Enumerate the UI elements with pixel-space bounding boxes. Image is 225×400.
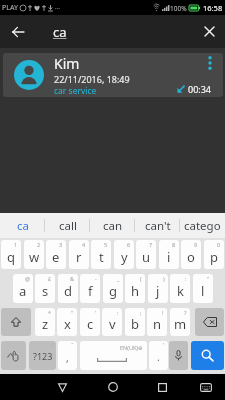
staticText: 2 — [37, 241, 41, 248]
staticText: ca — [17, 218, 29, 234]
button[interactable]: Back — [0, 15, 36, 48]
button[interactable]: catego — [180, 213, 225, 238]
button[interactable]: £ — [35, 274, 55, 303]
staticText: 00:34 — [188, 83, 212, 95]
staticText: u — [142, 248, 151, 266]
button[interactable]: Handwriting input — [1, 341, 26, 370]
button[interactable]: ! — [147, 308, 167, 336]
staticText: " — [71, 309, 74, 316]
button[interactable]: : — [102, 308, 122, 336]
button[interactable]: Shift — [1, 308, 31, 336]
staticText: ‹ — [52, 341, 54, 348]
button[interactable]: Voice input — [169, 341, 188, 370]
button[interactable]: * — [35, 308, 55, 336]
button[interactable]: 6 — [114, 240, 134, 269]
button[interactable]: ; — [125, 308, 145, 336]
staticText: j — [156, 282, 160, 300]
staticText: 100% — [170, 4, 187, 13]
button[interactable]: - — [80, 274, 100, 303]
button[interactable]: Recent apps — [140, 374, 184, 400]
button[interactable]: More options — [204, 54, 216, 72]
staticText: f — [88, 282, 93, 300]
staticText: 5 — [104, 241, 108, 248]
button[interactable]: Back — [40, 374, 84, 400]
button[interactable]: 3 — [46, 240, 66, 269]
staticText: £ — [48, 275, 52, 282]
button[interactable]: ? — [170, 308, 190, 336]
button[interactable]: can — [90, 213, 135, 238]
staticText: PLAY — [2, 3, 18, 13]
button[interactable]: Space — [80, 341, 147, 370]
staticText: can't — [145, 218, 171, 234]
staticText: y — [121, 248, 128, 266]
staticText: l — [201, 282, 205, 300]
button[interactable]: . — [149, 341, 168, 370]
staticText: i — [167, 248, 171, 266]
button[interactable]: @ — [13, 274, 33, 303]
staticText: ' — [163, 341, 165, 349]
button[interactable]: ' — [80, 308, 100, 336]
staticText: Kim — [54, 54, 80, 73]
button[interactable]: 7 — [136, 240, 156, 269]
button[interactable]: , — [58, 341, 77, 370]
button[interactable]: _ — [103, 274, 123, 303]
button[interactable]: Search — [191, 341, 224, 370]
staticText: c — [87, 315, 94, 333]
button[interactable]: Home — [90, 374, 135, 400]
button[interactable]: : — [170, 274, 190, 303]
staticText: w — [29, 248, 40, 266]
button[interactable]: 2 — [24, 240, 44, 269]
button[interactable]: Kim — [3, 53, 223, 97]
staticText: 1 — [14, 241, 18, 248]
staticText: catego — [184, 218, 221, 234]
button[interactable]: 8 — [159, 240, 179, 269]
button[interactable]: Backspace — [195, 308, 224, 336]
staticText: r — [76, 248, 82, 266]
button[interactable]: call — [45, 213, 90, 238]
button[interactable]: & — [58, 274, 78, 303]
button[interactable]: 9 — [181, 240, 201, 269]
staticText: s — [42, 282, 49, 300]
button[interactable]: " — [193, 274, 213, 303]
staticText: ! — [162, 309, 164, 316]
staticText: & — [70, 275, 75, 282]
staticText: g — [109, 282, 117, 300]
staticText: * — [48, 309, 52, 316]
button[interactable]: Clear search — [193, 15, 225, 48]
button[interactable]: ca — [0, 213, 45, 238]
staticText: q — [7, 248, 15, 266]
staticText: k — [177, 282, 184, 300]
button[interactable]: 1 — [1, 240, 21, 269]
button[interactable]: 0 — [204, 240, 224, 269]
staticText: ) — [163, 275, 165, 282]
staticText: - — [95, 275, 97, 282]
button[interactable]: ( — [125, 274, 145, 303]
staticText: z — [42, 315, 49, 333]
button[interactable]: 5 — [91, 240, 111, 269]
staticText: 4 — [82, 241, 86, 248]
button[interactable]: 4 — [69, 240, 89, 269]
staticText: ?123 — [33, 350, 53, 362]
button[interactable]: ?123 — [29, 341, 56, 370]
staticText: EN(UK)⊕ — [120, 344, 143, 351]
button[interactable]: Hide keyboard — [188, 374, 224, 400]
staticText: ˜ — [71, 341, 74, 349]
staticText: 9 — [194, 241, 198, 248]
staticText: . — [157, 350, 160, 364]
button[interactable]: ) — [148, 274, 168, 303]
staticText: ; — [140, 309, 142, 316]
staticText: m — [174, 315, 187, 333]
staticText: o — [187, 248, 195, 266]
staticText: 6 — [127, 241, 131, 248]
staticText: 16:58 — [203, 3, 223, 13]
staticText: call — [59, 218, 77, 234]
staticText: ? — [184, 309, 187, 316]
button[interactable]: " — [57, 308, 77, 336]
staticText: can — [103, 218, 123, 234]
staticText: b — [131, 315, 139, 333]
staticText: x — [64, 315, 71, 333]
staticText: 0 — [217, 241, 221, 248]
staticText: _ — [117, 275, 120, 282]
button[interactable]: can't — [135, 213, 180, 238]
staticText: : — [185, 275, 187, 282]
